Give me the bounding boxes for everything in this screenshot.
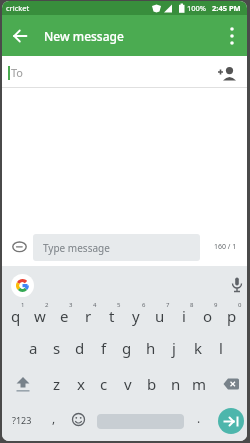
button[interactable]: w (28, 303, 52, 329)
staticText: 160 / 1 (214, 242, 237, 252)
staticText: 9 (214, 301, 218, 309)
button[interactable]: . (187, 405, 211, 431)
staticText: k (194, 338, 203, 358)
button[interactable]: x (69, 371, 93, 397)
button[interactable]: z (45, 371, 69, 397)
staticText: x (77, 374, 85, 394)
staticText: New message (44, 28, 124, 44)
staticText: y (132, 306, 140, 326)
button[interactable] (8, 24, 32, 48)
button[interactable] (11, 274, 34, 297)
button[interactable]: b (140, 371, 164, 397)
button[interactable]: t (100, 303, 124, 329)
staticText: v (124, 374, 132, 394)
staticText: h (146, 338, 156, 358)
staticText: m (192, 374, 207, 394)
staticText: Type message (43, 241, 110, 255)
button[interactable]: q (4, 303, 28, 329)
staticText: w (34, 306, 46, 326)
staticText: e (60, 306, 69, 326)
button[interactable]: f (92, 335, 116, 361)
button[interactable]: y (124, 303, 148, 329)
button[interactable] (10, 371, 36, 397)
staticText: 1 (21, 301, 25, 309)
button[interactable]: ?123 (6, 407, 38, 433)
staticText: To (11, 65, 24, 80)
button[interactable] (218, 371, 244, 397)
staticText: 4 (93, 301, 97, 309)
staticText: r (85, 306, 92, 326)
button[interactable] (8, 236, 30, 258)
button[interactable]: m (187, 371, 211, 397)
staticText: c (100, 374, 108, 394)
staticText: 6 (142, 301, 146, 309)
staticText: s (53, 338, 61, 358)
button[interactable]: To (2, 56, 247, 88)
staticText: o (203, 306, 213, 326)
staticText: t (109, 306, 115, 326)
staticText: n (171, 374, 181, 394)
staticText: 2:45 PM (212, 3, 241, 13)
staticText: a (29, 338, 38, 358)
button[interactable]: l (209, 335, 233, 361)
staticText: 5 (117, 301, 121, 309)
button[interactable]: k (186, 335, 210, 361)
staticText: j (172, 338, 176, 358)
button[interactable]: r (76, 303, 100, 329)
button[interactable]: v (116, 371, 140, 397)
staticText: z (53, 374, 61, 394)
staticText: p (227, 306, 237, 326)
button[interactable]: c (92, 371, 116, 397)
button[interactable]: j (162, 335, 186, 361)
staticText: g (122, 338, 132, 358)
button[interactable] (66, 407, 90, 431)
button[interactable]: , (42, 405, 66, 431)
button[interactable]: a (21, 335, 45, 361)
button[interactable] (226, 274, 247, 296)
staticText: 100% (187, 3, 207, 13)
staticText: 2 (45, 301, 49, 309)
staticText: b (147, 374, 157, 394)
button[interactable]: u (148, 303, 172, 329)
staticText: 7 (166, 301, 170, 309)
button[interactable]: n (164, 371, 188, 397)
button[interactable]: h (139, 335, 163, 361)
staticText: i (182, 306, 186, 326)
staticText: cricket (6, 3, 30, 13)
staticText: u (155, 306, 165, 326)
button[interactable]: Type message (33, 234, 200, 261)
button[interactable]: s (45, 335, 69, 361)
staticText: q (11, 306, 21, 326)
staticText: . (197, 410, 201, 426)
button[interactable] (221, 25, 243, 47)
button[interactable]: o (196, 303, 220, 329)
button[interactable]: d (68, 335, 92, 361)
staticText: 0 (238, 301, 242, 309)
staticText: 3 (69, 301, 73, 309)
button[interactable]: i (172, 303, 196, 329)
button[interactable]: p (220, 303, 244, 329)
button[interactable] (215, 62, 239, 86)
staticText: 8 (190, 301, 194, 309)
staticText: , (52, 410, 56, 426)
button[interactable] (218, 408, 244, 434)
staticText: d (75, 338, 85, 358)
staticText: f (101, 338, 107, 358)
button[interactable]: e (52, 303, 76, 329)
button[interactable]: g (115, 335, 139, 361)
staticText: ?123 (12, 414, 32, 426)
staticText: l (219, 338, 223, 358)
